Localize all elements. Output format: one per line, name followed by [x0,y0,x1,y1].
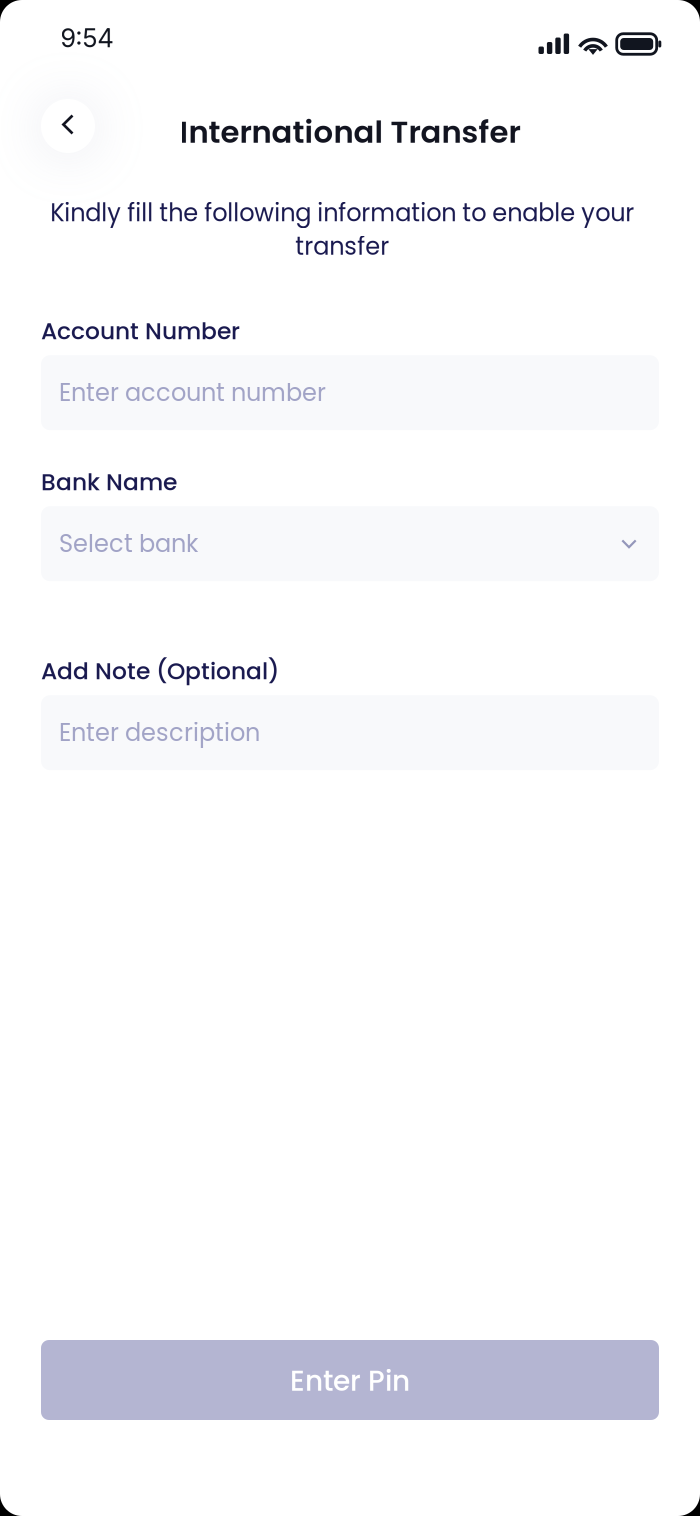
staticText: 9:54 [60,23,113,53]
staticText: Bank Name [41,466,177,499]
button[interactable]: Back [0,51,143,201]
staticText: Add Note (Optional) [41,655,279,688]
staticText: Account Number [41,315,240,348]
button[interactable]: Enter Pin [41,1340,659,1420]
staticText: Enter description [59,716,260,749]
staticText: Enter account number [59,376,326,409]
staticText: Enter Pin [290,1361,410,1401]
staticText: Select bank [59,527,198,560]
staticText: Kindly fill the following information to… [50,196,634,263]
button[interactable]: Select bank [41,506,659,581]
button[interactable]: Enter account number [41,355,659,430]
staticText: International Transfer [179,110,520,153]
button[interactable]: Enter description [41,695,659,770]
